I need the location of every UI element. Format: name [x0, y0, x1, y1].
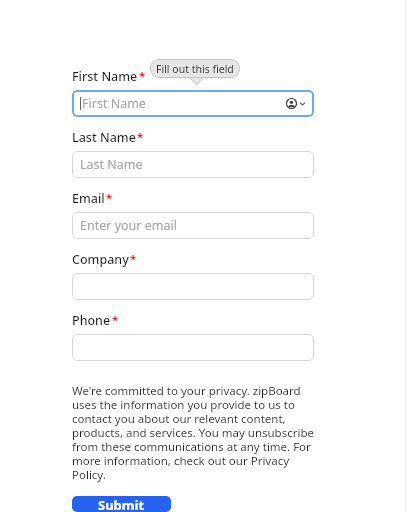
button[interactable]: Submit: [72, 496, 171, 512]
button[interactable]: Enter your email: [72, 212, 314, 239]
staticText: Last Name: [72, 129, 136, 146]
button[interactable]: Last Name: [72, 151, 314, 178]
staticText: Company: [72, 251, 129, 268]
button[interactable]: First Name: [72, 90, 314, 117]
staticText: Enter your email: [80, 217, 177, 234]
staticText: *: [137, 129, 143, 144]
button[interactable]: Autofill contact: [286, 98, 306, 109]
staticText: *: [139, 68, 145, 83]
staticText: We're committed to your privacy. zipBoar…: [72, 383, 314, 483]
staticText: *: [106, 190, 112, 205]
staticText: Fill out this field: [156, 62, 234, 76]
staticText: *: [130, 251, 136, 266]
staticText: *: [112, 312, 118, 327]
staticText: Email: [72, 190, 105, 207]
button[interactable]: [72, 273, 314, 300]
staticText: First Name: [72, 68, 138, 85]
staticText: Submit: [98, 496, 145, 512]
staticText: First Name: [82, 95, 146, 112]
button[interactable]: [72, 334, 314, 361]
staticText: Phone: [72, 312, 111, 329]
staticText: Last Name: [80, 156, 143, 173]
